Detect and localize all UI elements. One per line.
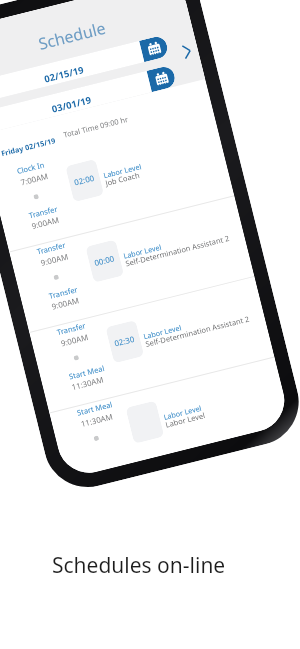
staticText: Labor Level (162, 403, 203, 422)
staticText: 9:00AM (50, 295, 80, 312)
staticText: 11:30AM (71, 374, 105, 393)
staticText: 02/15/19 (43, 63, 86, 85)
staticText: Schedules on-line (52, 551, 226, 580)
staticText: Transfer (28, 203, 59, 220)
staticText: 03/01/19 (50, 93, 93, 116)
button[interactable]: 03/01/19 (0, 65, 177, 132)
staticText: 9:00AM (40, 251, 69, 269)
staticText: 7:00AM (20, 171, 49, 188)
staticText: Friday 02/15/19 (0, 135, 57, 158)
button[interactable]: Start Meal (49, 357, 291, 479)
staticText: Labor Level (142, 322, 183, 341)
staticText: Transfer (56, 320, 87, 337)
staticText: Labor Level (164, 410, 207, 430)
staticText: Start Meal (76, 399, 113, 418)
staticText: Transfer (48, 284, 79, 301)
staticText: Total Time 09:00 hr (62, 114, 130, 140)
staticText: 00:00 (93, 253, 116, 269)
button[interactable]: 02/15/19 (0, 34, 169, 102)
staticText: Labor Level (122, 242, 163, 261)
staticText: Transfer (36, 240, 67, 257)
staticText: Self-Determination Assistant 2 (124, 233, 230, 268)
button[interactable]: Clock In (0, 116, 234, 252)
staticText: Job Coach (104, 170, 141, 188)
staticText: 02:00 (73, 173, 96, 188)
staticText: Clock In (16, 159, 45, 176)
staticText: Start Meal (68, 363, 105, 381)
staticText: 9:00AM (60, 332, 89, 349)
button[interactable]: Transfer (9, 196, 254, 333)
staticText: Schedule (36, 17, 108, 55)
staticText: Self-Determination Assistant 2 (144, 313, 251, 349)
staticText: 02:30 (113, 334, 136, 350)
staticText: 9:00AM (30, 215, 60, 232)
staticText: Labor Level (102, 161, 143, 180)
button[interactable]: Next (176, 41, 198, 62)
staticText: 11:30AM (80, 411, 114, 430)
button[interactable]: Transfer (29, 277, 275, 413)
